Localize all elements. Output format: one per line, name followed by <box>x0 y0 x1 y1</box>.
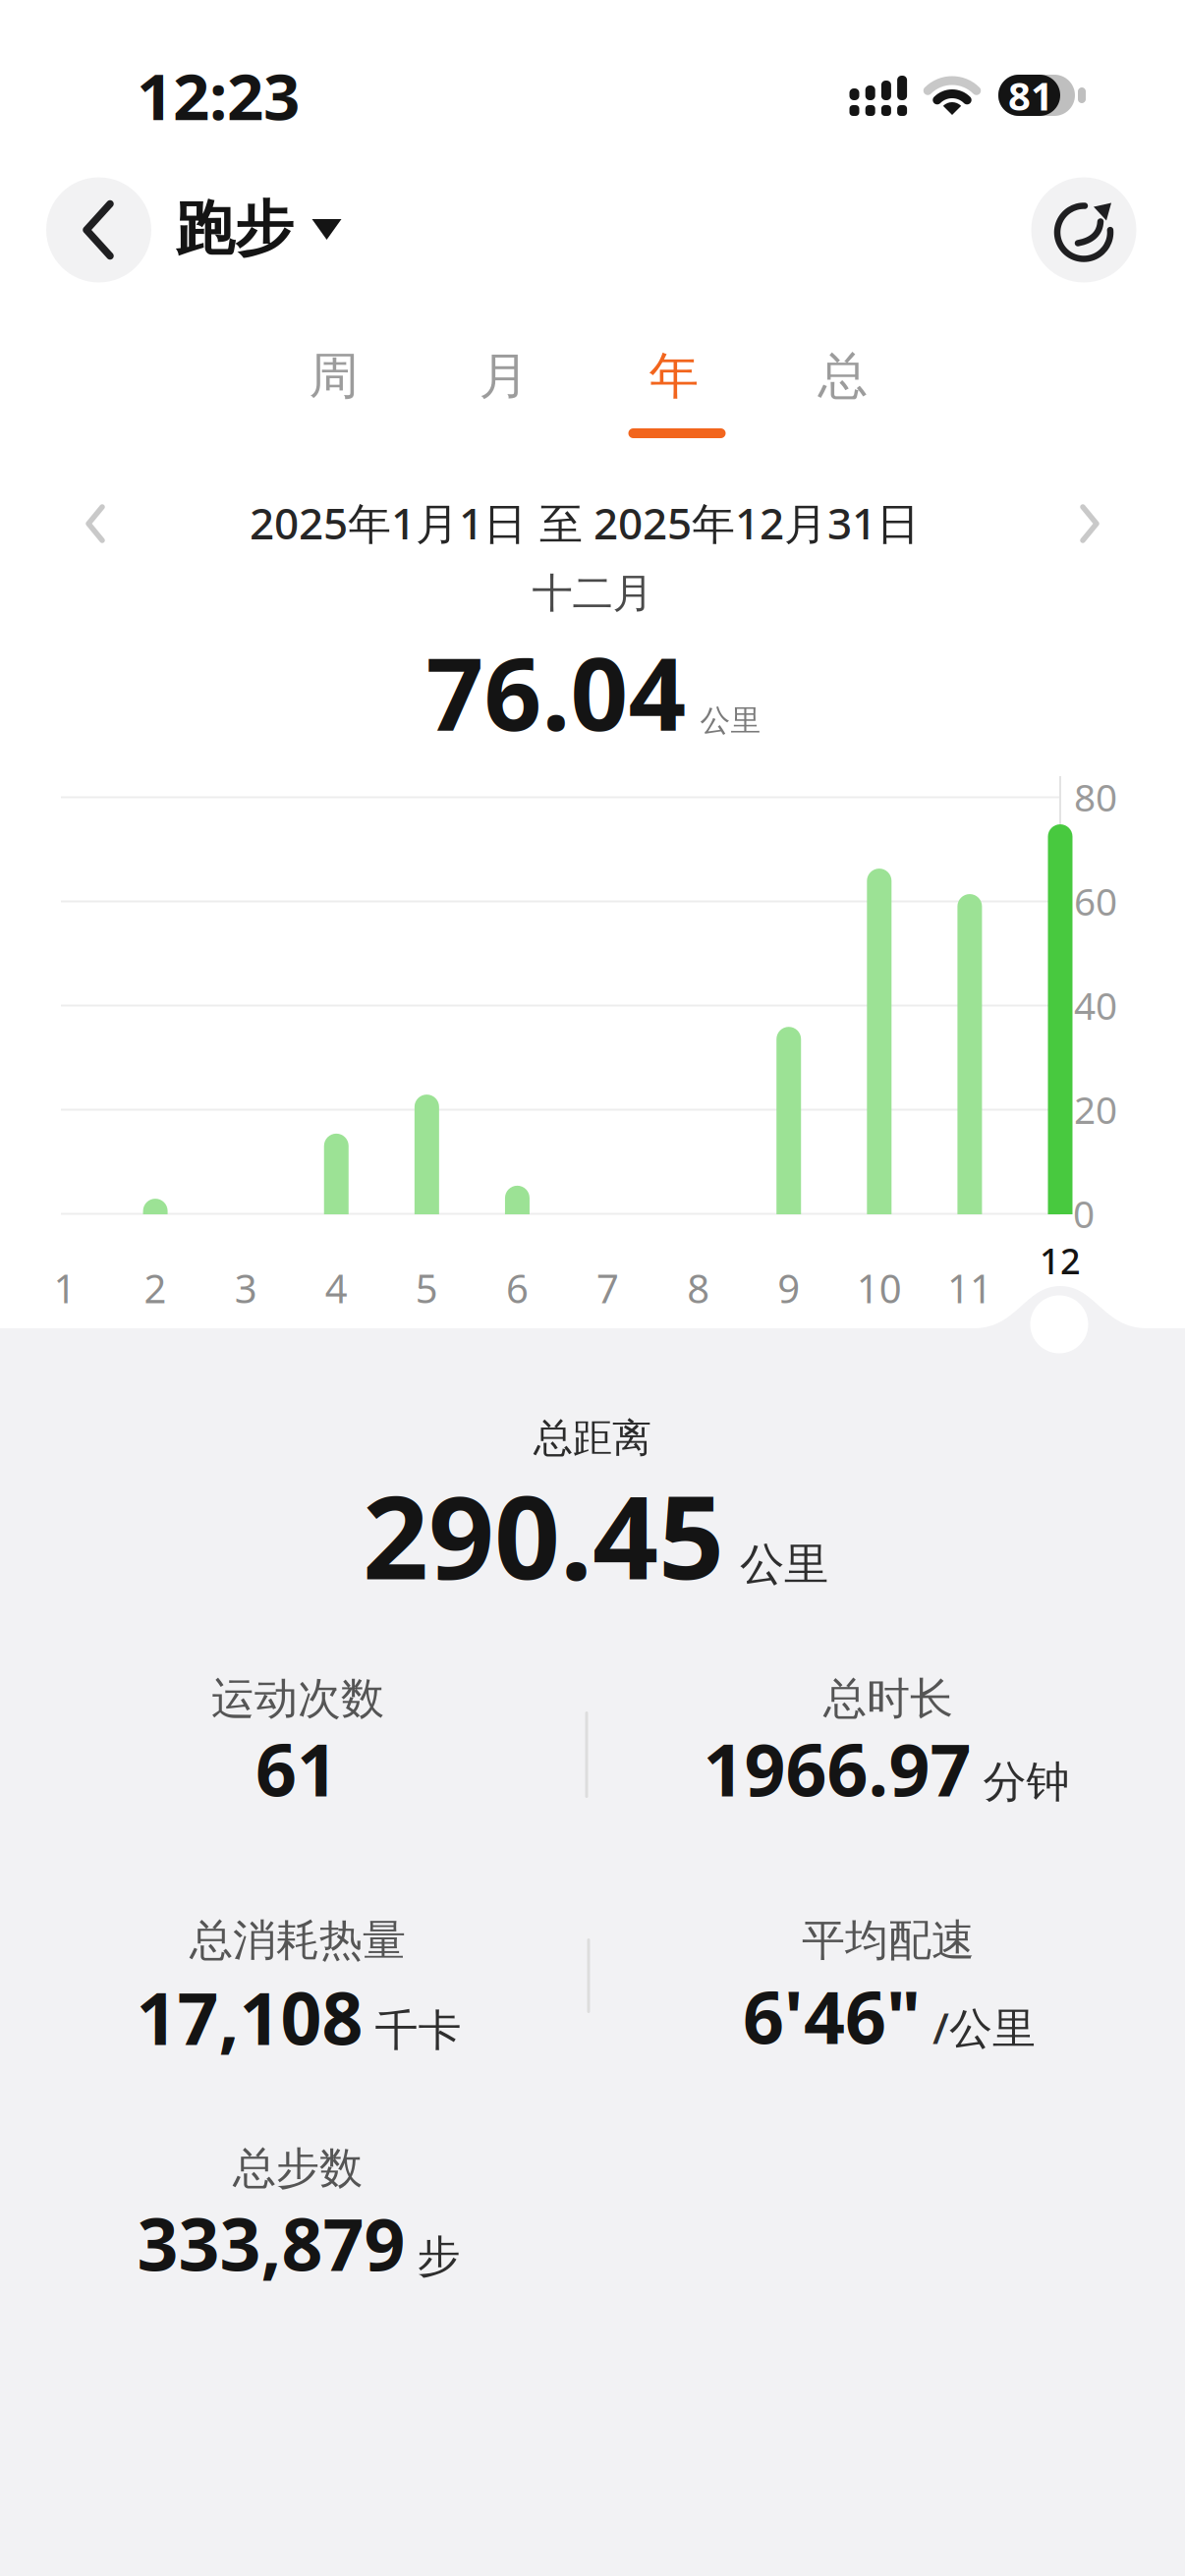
staticText: 5 <box>416 1262 438 1314</box>
staticText: 十二月 <box>532 568 653 618</box>
staticText: 3 <box>235 1262 257 1314</box>
staticText: 2025年1月1日 至 2025年12月31日 <box>250 494 920 551</box>
staticText: 年 <box>649 346 699 407</box>
staticText: 80 <box>1074 772 1117 822</box>
button[interactable]: 年 <box>605 332 743 420</box>
staticText: 运动次数 <box>211 1672 384 1725</box>
staticText: 千卡 <box>375 2004 461 2057</box>
staticText: 1966.97 <box>703 1721 971 1816</box>
staticText: 总步数 <box>233 2142 363 2195</box>
staticText: 12 <box>1040 1237 1081 1284</box>
staticText: 40 <box>1074 980 1117 1030</box>
staticText: 总 <box>818 346 868 407</box>
staticText: 月 <box>479 346 529 407</box>
staticText: 17,108 <box>136 1969 363 2065</box>
staticText: 333,879 <box>137 2195 405 2291</box>
staticText: 步 <box>417 2230 460 2283</box>
staticText: 290.45 <box>363 1458 724 1611</box>
button[interactable] <box>1060 494 1119 553</box>
button[interactable]: 总 <box>774 332 912 420</box>
staticText: 2 <box>144 1262 167 1314</box>
staticText: 76.04 <box>426 625 686 759</box>
staticText: 周 <box>309 346 359 407</box>
staticText: 跑步 <box>175 193 293 265</box>
staticText: 4 <box>325 1262 348 1314</box>
staticText: 6'46" <box>743 1968 921 2064</box>
staticText: 60 <box>1074 876 1117 926</box>
button[interactable] <box>46 177 151 282</box>
staticText: 总时长 <box>823 1672 953 1725</box>
staticText: 12:23 <box>137 53 300 138</box>
button[interactable]: 跑步 <box>174 176 346 282</box>
button[interactable]: 月 <box>435 332 573 420</box>
staticText: 公里 <box>740 1537 828 1592</box>
staticText: 10 <box>857 1262 902 1314</box>
staticText: 1 <box>54 1262 76 1314</box>
staticText: 20 <box>1074 1084 1117 1134</box>
staticText: 总距离 <box>534 1414 651 1462</box>
button[interactable] <box>1031 177 1136 282</box>
staticText: 7 <box>596 1262 619 1314</box>
staticText: 0 <box>1073 1188 1095 1238</box>
staticText: 公里 <box>700 702 761 739</box>
staticText: 6 <box>506 1262 529 1314</box>
staticText: 总消耗热量 <box>190 1914 406 1967</box>
staticText: 11 <box>947 1262 992 1314</box>
staticText: 9 <box>777 1262 800 1314</box>
staticText: 8 <box>687 1262 710 1314</box>
staticText: /公里 <box>932 1999 1036 2056</box>
staticText: 平均配速 <box>802 1914 975 1967</box>
staticText: 分钟 <box>983 1755 1070 1809</box>
staticText: 81 <box>1008 69 1053 121</box>
button[interactable]: 周 <box>265 332 403 420</box>
button[interactable] <box>66 494 125 553</box>
staticText: 61 <box>255 1721 338 1816</box>
